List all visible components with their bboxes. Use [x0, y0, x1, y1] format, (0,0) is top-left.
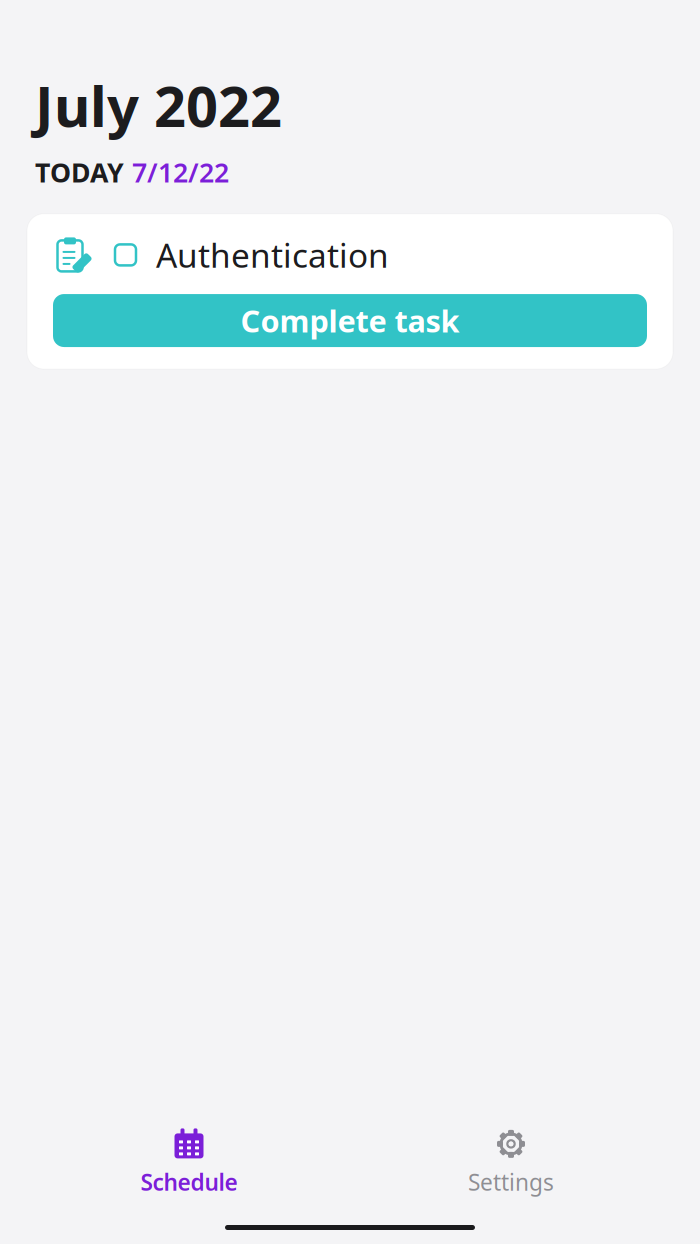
staticText: TODAY: [35, 154, 124, 190]
staticText: Authentication: [156, 233, 389, 277]
button[interactable]: Settings: [350, 1124, 672, 1201]
staticText: Complete task: [240, 300, 459, 341]
button[interactable]: Toggle task complete: [111, 240, 140, 269]
staticText: 7/12/22: [132, 154, 229, 190]
staticText: July 2022: [35, 68, 282, 142]
button[interactable]: Complete task: [53, 294, 647, 347]
staticText: Schedule: [140, 1167, 237, 1197]
staticText: Settings: [468, 1167, 554, 1197]
button[interactable]: Schedule: [28, 1124, 350, 1201]
